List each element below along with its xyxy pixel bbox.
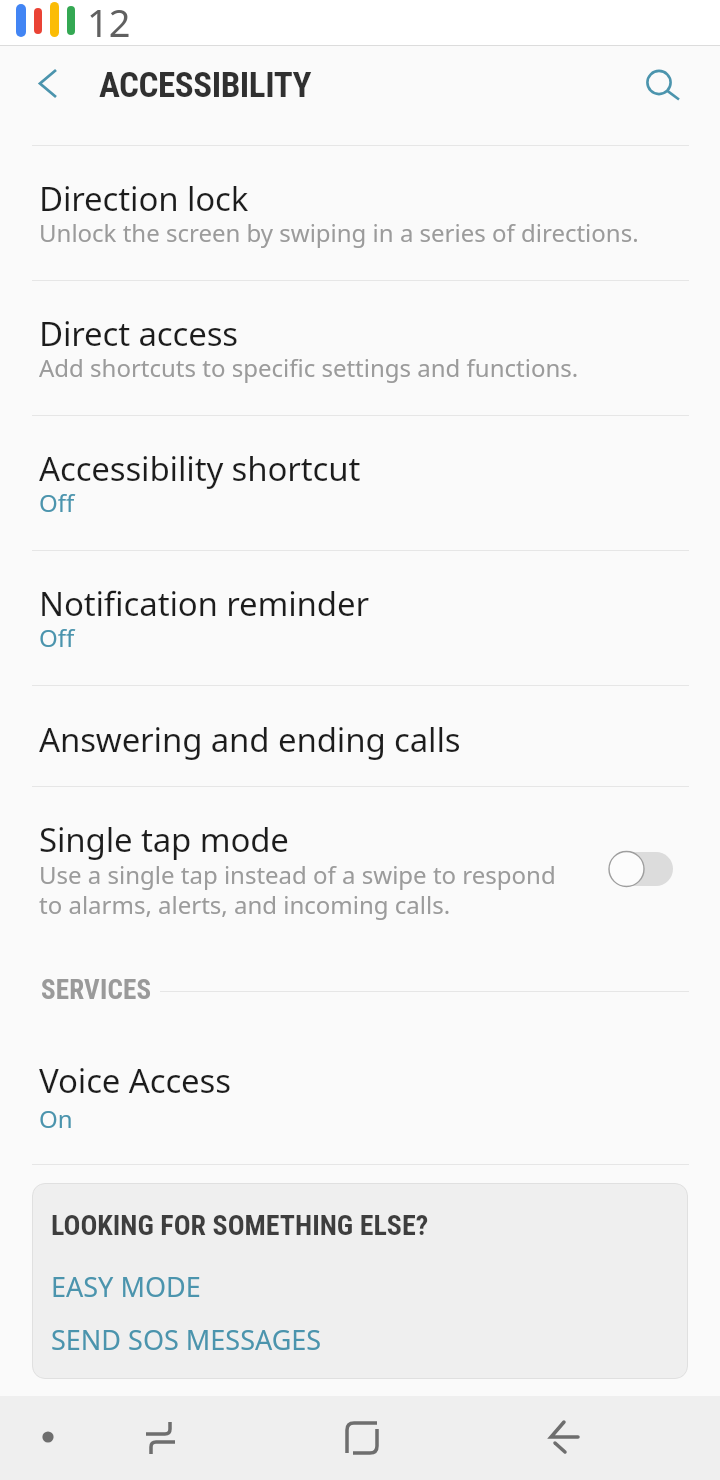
staticText: Notification reminder: [39, 581, 369, 626]
staticText: Accessibility shortcut: [39, 446, 361, 491]
button[interactable]: Pin navigation bar: [24, 1413, 72, 1461]
staticText: Direct access: [39, 311, 238, 356]
staticText: Direction lock: [39, 176, 249, 221]
staticText: ACCESSIBILITY: [99, 65, 312, 106]
staticText: 12: [87, 0, 131, 41]
button[interactable]: Answering and ending calls: [0, 686, 720, 786]
button[interactable]: Direct access: [0, 281, 720, 415]
staticText: Off: [39, 621, 75, 654]
button[interactable]: EASY MODE: [51, 1268, 201, 1305]
staticText: Use a single tap instead of a swipe to r…: [39, 858, 556, 921]
staticText: LOOKING FOR SOMETHING ELSE?: [51, 1209, 429, 1242]
button[interactable]: Direction lock: [0, 146, 720, 280]
staticText: Off: [39, 486, 75, 519]
button[interactable]: Single tap mode: [0, 787, 720, 945]
button[interactable]: Search: [618, 55, 698, 135]
staticText: Unlock the screen by swiping in a series…: [39, 216, 639, 249]
button[interactable]: Single tap mode toggle: [608, 850, 674, 888]
staticText: On: [39, 1102, 73, 1135]
button[interactable]: Home: [320, 1408, 400, 1480]
button[interactable]: Navigate up: [0, 51, 88, 139]
button[interactable]: Back: [524, 1408, 604, 1480]
button[interactable]: SEND SOS MESSAGES: [51, 1321, 322, 1358]
staticText: Add shortcuts to specific settings and f…: [39, 351, 579, 384]
staticText: Single tap mode: [39, 817, 289, 862]
staticText: Answering and ending calls: [39, 717, 461, 762]
button[interactable]: Accessibility shortcut: [0, 416, 720, 550]
button[interactable]: Voice Access: [0, 1012, 720, 1164]
button[interactable]: Notification reminder: [0, 551, 720, 685]
staticText: SERVICES: [41, 974, 152, 1006]
staticText: Voice Access: [39, 1058, 231, 1103]
button[interactable]: Recent apps: [120, 1408, 200, 1480]
